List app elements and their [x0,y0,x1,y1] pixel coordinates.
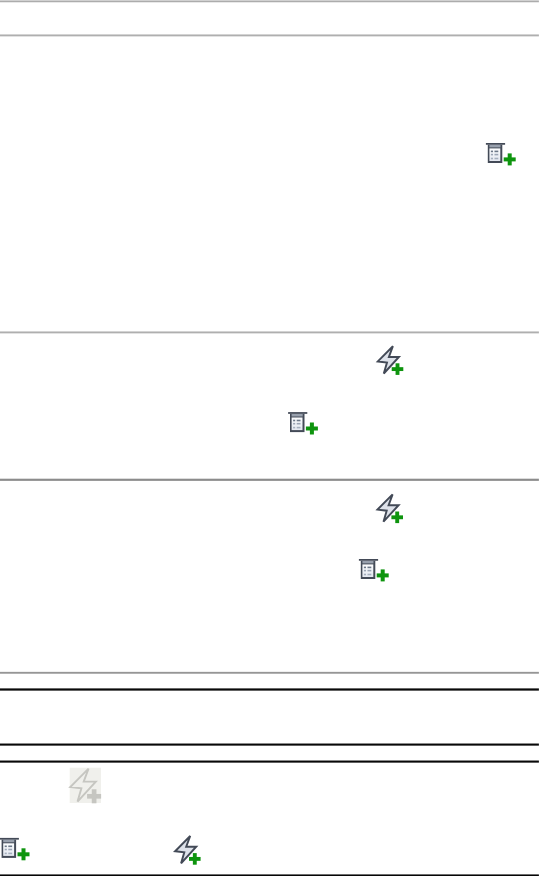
button[interactable]: New document [0,838,30,861]
button[interactable]: Quick add [377,345,404,375]
button[interactable]: New document [359,559,389,582]
button[interactable]: Quick add [377,493,404,523]
button[interactable]: Quick add [174,835,201,865]
button[interactable]: Quick add (disabled) [70,768,101,803]
button[interactable]: New document [288,412,318,435]
button[interactable]: New document [486,143,516,166]
